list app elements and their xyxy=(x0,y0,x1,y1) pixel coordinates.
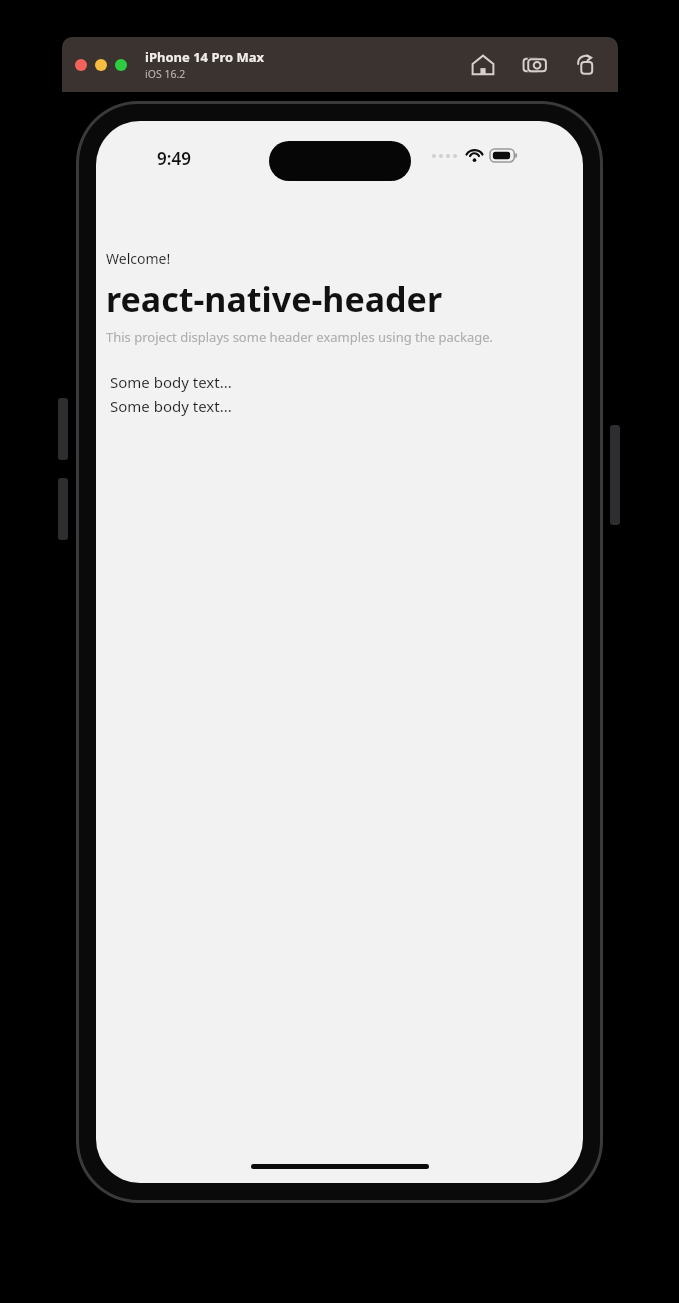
button[interactable]: Rotate xyxy=(574,52,600,78)
button[interactable]: Maximize xyxy=(115,59,127,71)
staticText: This project displays some header exampl… xyxy=(106,328,494,346)
staticText: iPhone 14 Pro Max xyxy=(145,48,265,66)
button[interactable]: Minimize xyxy=(95,59,107,71)
button[interactable]: Screenshot xyxy=(522,52,548,78)
staticText: Some body text... xyxy=(110,372,232,392)
staticText: 9:49 xyxy=(157,147,191,170)
staticText: iOS 16.2 xyxy=(145,67,186,81)
staticText: Some body text... xyxy=(110,396,232,416)
button[interactable]: Home xyxy=(470,52,496,78)
staticText: Welcome! xyxy=(106,249,171,268)
button[interactable]: Close xyxy=(75,59,87,71)
staticText: react-native-header xyxy=(106,276,443,322)
